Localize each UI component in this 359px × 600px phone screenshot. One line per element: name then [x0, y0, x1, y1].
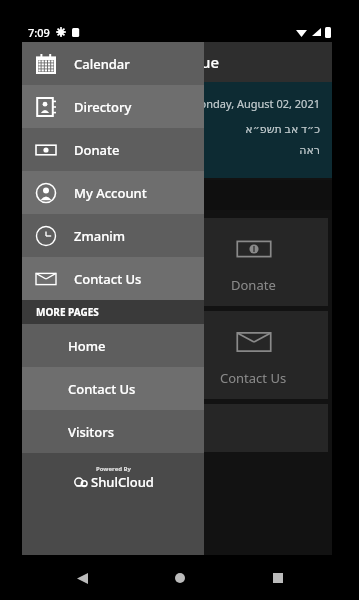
staticText: Directory	[72, 369, 129, 387]
staticText: Powered By	[96, 465, 131, 473]
staticText: Directory	[74, 98, 132, 116]
staticText: Home	[68, 337, 106, 355]
staticText: MORE PAGES	[36, 305, 99, 319]
button[interactable]: Zmanim	[22, 214, 204, 257]
staticText: כ״ד אב תשפ״א	[34, 121, 320, 136]
button[interactable]: Visitors	[22, 410, 204, 453]
staticText: Contact Us	[74, 270, 142, 288]
button[interactable]: Directory	[26, 311, 174, 399]
staticText: Visitors	[68, 423, 115, 441]
staticText: ShulCloud	[91, 473, 154, 491]
button[interactable]: Donate	[179, 218, 328, 306]
staticText: Contact Us	[68, 380, 136, 398]
staticText: My Account	[74, 184, 147, 202]
staticText: Donate	[74, 141, 120, 159]
button[interactable]: Calendar	[22, 42, 204, 85]
staticText: ראה	[34, 144, 320, 157]
staticText: Donate	[231, 276, 276, 294]
button[interactable]: Donate	[22, 128, 204, 171]
button[interactable]: Home	[163, 561, 197, 595]
button[interactable]: Contact Us	[22, 257, 204, 300]
staticText: Monday, August 02, 2021	[34, 96, 320, 111]
button[interactable]: Contact Us	[22, 367, 204, 410]
staticText: 7:09	[28, 25, 50, 40]
staticText: East Hill Synagogue	[78, 52, 220, 72]
staticText: Contact Us	[220, 369, 287, 387]
button[interactable]: Recents	[261, 561, 295, 595]
button[interactable]: Back	[65, 561, 99, 595]
button[interactable]: Home	[22, 324, 204, 367]
button[interactable]: More	[26, 404, 328, 452]
staticText: Calendar	[73, 276, 128, 294]
button[interactable]: Directory	[22, 85, 204, 128]
button[interactable]: Calendar	[26, 218, 174, 306]
staticText: Calendar	[74, 55, 130, 73]
button[interactable]: Contact Us	[179, 311, 328, 399]
button[interactable]: My Account	[22, 171, 204, 214]
staticText: Zmanim	[74, 227, 126, 245]
button[interactable]: Back	[34, 45, 68, 79]
